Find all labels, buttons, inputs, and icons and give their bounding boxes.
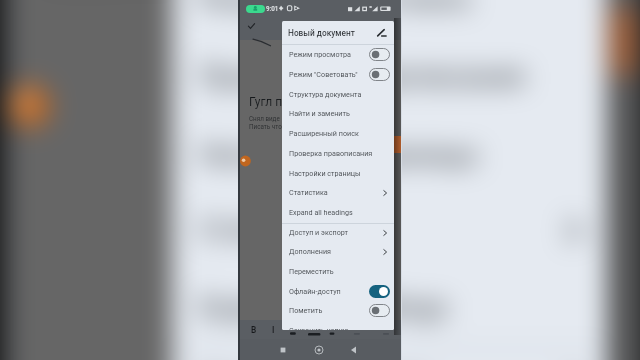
button[interactable]: Переместить xyxy=(282,262,394,282)
staticText: Режим "Советовать" xyxy=(289,70,358,78)
staticText: Офлайн-доступ xyxy=(289,287,341,295)
button[interactable]: Дополнения xyxy=(282,242,394,262)
button[interactable]: Проверка правописания xyxy=(172,39,609,117)
button[interactable]: Пометить xyxy=(282,301,394,321)
staticText: Проверка правописания xyxy=(289,149,373,157)
button[interactable]: Настройки страницы xyxy=(172,118,609,196)
staticText: Переместить xyxy=(289,267,334,275)
button[interactable]: Доступ и экспорт xyxy=(282,223,394,243)
staticText: Гугл п xyxy=(249,95,283,109)
button[interactable]: Expand all headings xyxy=(172,270,609,348)
button[interactable]: Офлайн-доступ xyxy=(282,282,394,302)
button[interactable]: Проверка правописания xyxy=(282,144,394,164)
button[interactable]: Статистика xyxy=(282,183,394,203)
button[interactable]: Структура документа xyxy=(282,85,394,105)
button[interactable]: Режим просмотра xyxy=(282,45,394,65)
staticText: Режим просмотра xyxy=(289,50,351,58)
staticText: Expand all headings xyxy=(199,289,449,320)
staticText: Проверка правописания xyxy=(199,59,527,90)
staticText: Структура документа xyxy=(289,90,362,98)
staticText: Дополнения xyxy=(289,247,332,255)
button[interactable]: Назад xyxy=(348,344,360,356)
staticText: Статистика xyxy=(199,211,351,242)
staticText: Расширенный поиск xyxy=(199,0,472,12)
button[interactable]: Expand all headings xyxy=(282,203,394,223)
button[interactable]: Доступ и экспорт xyxy=(172,348,609,360)
button[interactable]: Режим "Советовать" xyxy=(282,65,394,85)
staticText: Новый документ xyxy=(288,28,355,38)
button[interactable]: Найти и заменить xyxy=(282,104,394,124)
staticText: Найти и заменить xyxy=(289,109,350,117)
button[interactable]: Расширенный поиск xyxy=(172,0,609,39)
staticText: Расширенный поиск xyxy=(289,129,359,137)
staticText: B xyxy=(251,325,257,335)
button[interactable]: Главный экран xyxy=(313,344,325,356)
staticText: Сохранить копию xyxy=(289,326,349,330)
staticText: Пометить xyxy=(289,306,323,314)
staticText: Доступ и экспорт xyxy=(289,228,348,236)
button[interactable]: Сохранить копию xyxy=(282,321,394,330)
staticText: Писать что xyxy=(249,123,282,130)
button[interactable]: Готово xyxy=(246,21,257,32)
button[interactable]: Статистика xyxy=(172,192,609,270)
button[interactable]: Переименовать xyxy=(375,27,388,39)
staticText: Снял виде xyxy=(249,115,280,122)
button[interactable]: Полужирный xyxy=(246,320,260,339)
staticText: Настройки страницы xyxy=(199,137,480,168)
staticText: Expand all headings xyxy=(289,208,353,216)
staticText: Настройки страницы xyxy=(289,169,361,177)
button[interactable]: Обзор xyxy=(277,344,289,356)
staticText: 9:01 xyxy=(266,5,279,12)
staticText: I xyxy=(272,325,275,335)
button[interactable]: Расширенный поиск xyxy=(282,124,394,144)
button[interactable]: Настройки страницы xyxy=(282,164,394,184)
staticText: Статистика xyxy=(289,188,328,196)
button[interactable]: Курсив xyxy=(267,320,281,339)
